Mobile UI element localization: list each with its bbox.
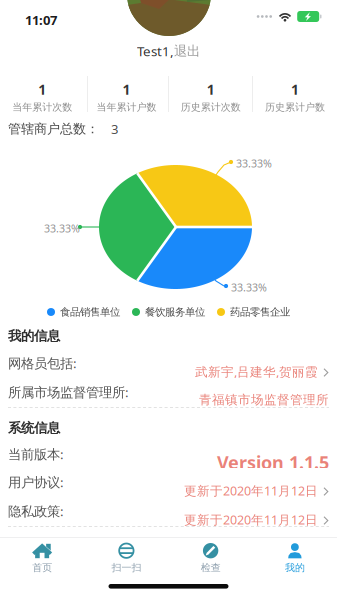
staticText: 33.33% <box>44 221 80 235</box>
button[interactable]: 用户协议: <box>8 468 329 497</box>
button[interactable]: 网格员包括: <box>8 349 329 378</box>
staticText: 11:07 <box>25 11 57 29</box>
staticText: 用户协议: <box>8 473 64 491</box>
staticText: 首页 <box>32 561 52 574</box>
staticText: 退出 <box>174 43 200 59</box>
staticText: 武新宇,吕建华,贺丽霞 <box>195 363 318 380</box>
staticText: Version 1.1.5 <box>217 450 329 474</box>
staticText: 管辖商户总数： <box>8 121 99 137</box>
staticText: 食品销售单位 <box>60 305 120 318</box>
staticText: 所属市场监督管理所: <box>8 383 129 401</box>
button[interactable]: 所属市场监督管理所: <box>8 378 329 407</box>
button[interactable]: Test1, <box>0 41 337 61</box>
staticText: 我的 <box>285 561 305 574</box>
staticText: 隐私政策: <box>8 502 64 520</box>
staticText: 更新于2020年11月12日 <box>184 511 318 528</box>
staticText: 扫一扫 <box>111 561 141 574</box>
staticText: 1 <box>291 80 299 99</box>
staticText: 青福镇市场监督管理所 <box>199 392 329 408</box>
staticText: 餐饮服务单位 <box>145 305 205 318</box>
staticText: 33.33% <box>236 156 272 170</box>
button[interactable]: 检查 <box>168 538 253 578</box>
staticText: 药品零售企业 <box>230 305 290 318</box>
staticText: 检查 <box>201 561 221 574</box>
staticText: 当年累计户数 <box>96 101 156 113</box>
button[interactable]: 首页 <box>0 538 84 578</box>
staticText: 当年累计次数 <box>12 101 72 113</box>
staticText: 3 <box>111 120 118 138</box>
staticText: 当前版本: <box>8 445 64 463</box>
button[interactable]: 我的 <box>253 538 337 578</box>
staticText: 1 <box>122 80 130 99</box>
staticText: 历史累计次数 <box>181 101 241 113</box>
staticText: 33.33% <box>231 280 267 294</box>
staticText: 系统信息 <box>8 420 60 436</box>
staticText: 我的信息 <box>8 328 60 344</box>
staticText: 网格员包括: <box>8 354 77 372</box>
staticText: 历史累计户数 <box>265 101 325 113</box>
button[interactable]: 扫一扫 <box>84 538 168 578</box>
staticText: Test1, <box>137 42 174 60</box>
staticText: 1 <box>38 80 46 99</box>
button[interactable]: 隐私政策: <box>8 497 329 526</box>
staticText: 更新于2020年11月12日 <box>184 482 318 499</box>
staticText: 1 <box>207 80 215 99</box>
